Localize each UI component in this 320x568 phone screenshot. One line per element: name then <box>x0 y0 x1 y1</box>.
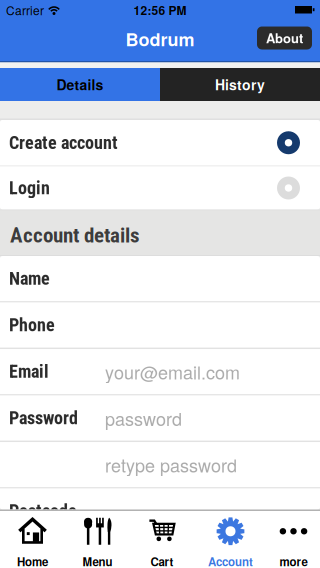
staticText: Create account <box>9 132 118 153</box>
staticText: Menu <box>82 553 112 568</box>
staticText: Email <box>9 361 49 382</box>
staticText: Name <box>9 268 50 289</box>
button[interactable]: Postcode <box>0 489 320 534</box>
staticText: more <box>279 553 307 568</box>
staticText: Account <box>208 553 253 568</box>
staticText: Account details <box>10 223 140 247</box>
staticText: About <box>266 29 303 47</box>
staticText: Login <box>9 177 50 199</box>
button[interactable]: Cart <box>130 511 194 568</box>
staticText: History <box>215 74 265 94</box>
button[interactable]: Account <box>194 511 267 568</box>
button[interactable]: Menu <box>65 511 130 568</box>
button[interactable]: History <box>160 68 320 101</box>
staticText: Password <box>9 408 78 429</box>
button[interactable]: Password <box>0 396 320 441</box>
button[interactable]: Name <box>0 256 320 301</box>
button[interactable]: Phone <box>0 303 320 348</box>
staticText: password <box>105 405 182 431</box>
staticText: Phone <box>9 315 55 336</box>
staticText: Postcode <box>9 501 77 522</box>
staticText: 12:56 PM <box>133 1 186 19</box>
staticText: Home <box>17 553 48 568</box>
staticText: Carrier <box>6 1 44 19</box>
button[interactable]: more <box>267 511 320 568</box>
button[interactable]: About <box>257 26 312 49</box>
button[interactable]: Details <box>0 68 160 101</box>
staticText: your@email.com <box>105 359 240 384</box>
button[interactable]: retype password <box>0 442 320 487</box>
button[interactable]: Login <box>0 166 320 209</box>
button[interactable]: Home <box>0 511 65 568</box>
staticText: Bodrum <box>125 26 194 52</box>
staticText: Details <box>56 74 103 94</box>
staticText: Cart <box>150 553 173 568</box>
button[interactable]: Create account <box>0 120 320 165</box>
button[interactable]: Email <box>0 349 320 394</box>
staticText: retype password <box>105 452 237 477</box>
